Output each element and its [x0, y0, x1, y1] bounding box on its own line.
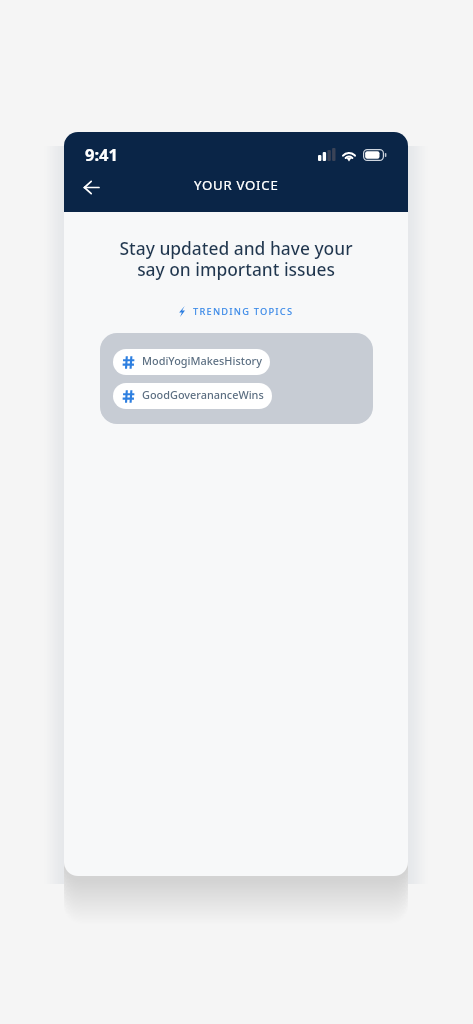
staticText: ModiYogiMakesHistory	[142, 353, 262, 368]
staticText: YOUR VOICE	[194, 176, 279, 194]
button[interactable]: GoodGoverananceWins	[113, 383, 272, 409]
staticText: Stay updated and have your say on import…	[64, 236, 408, 281]
button[interactable]: Back	[76, 172, 106, 202]
button[interactable]: ModiYogiMakesHistory	[113, 349, 270, 375]
staticText: 9:41	[85, 143, 118, 165]
staticText: GoodGoverananceWins	[142, 387, 264, 402]
staticText: TRENDING TOPICS	[193, 305, 294, 318]
